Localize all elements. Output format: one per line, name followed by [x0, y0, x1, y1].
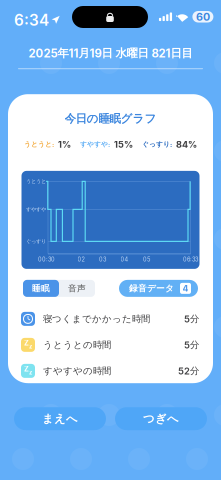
staticText: 60: [196, 10, 210, 23]
staticText: 1%: [58, 139, 71, 150]
staticText: 84%: [176, 139, 197, 150]
staticText: 04: [120, 256, 128, 263]
staticText: ぐっすり:: [142, 140, 172, 149]
staticText: z: [29, 369, 32, 376]
staticText: 15%: [114, 139, 133, 150]
button[interactable]: 音声: [59, 280, 95, 297]
staticText: 2025年11月19日 水曜日 821日目: [28, 46, 192, 60]
button[interactable]: Z: [8, 358, 213, 384]
staticText: 録音データ: [129, 283, 174, 294]
button[interactable]: 寝つくまでかかった時間: [8, 306, 213, 332]
staticText: 音声: [68, 283, 86, 294]
staticText: 6:34: [14, 11, 49, 30]
staticText: すやすやの時間: [43, 365, 111, 377]
staticText: Z: [24, 364, 29, 373]
staticText: うとうとの時間: [43, 339, 111, 351]
staticText: 00:30: [38, 256, 55, 263]
button[interactable]: つぎへ: [115, 407, 207, 430]
staticText: すやすや: [26, 206, 46, 213]
staticText: うとうと:: [24, 140, 54, 149]
button[interactable]: 睡眠: [23, 280, 59, 297]
staticText: 05: [143, 256, 150, 263]
staticText: 06:33: [183, 256, 198, 263]
staticText: まえへ: [42, 411, 78, 426]
staticText: 寝つくまでかかった時間: [43, 313, 150, 325]
staticText: Z: [24, 338, 29, 347]
staticText: うとうと: [26, 178, 46, 185]
staticText: z: [29, 343, 32, 350]
staticText: 5分: [184, 313, 199, 325]
staticText: 02: [77, 256, 84, 263]
button[interactable]: 録音データ: [119, 280, 198, 297]
staticText: 今日の睡眠グラフ: [64, 111, 156, 126]
staticText: すやすや:: [80, 140, 110, 149]
staticText: 03: [99, 256, 106, 263]
button[interactable]: まえへ: [14, 407, 106, 430]
staticText: ぐっすり: [26, 238, 46, 245]
staticText: 睡眠: [32, 283, 50, 294]
staticText: つぎへ: [143, 411, 179, 426]
staticText: 5分: [184, 339, 199, 351]
staticText: 52分: [178, 365, 199, 377]
button[interactable]: Z: [8, 332, 213, 358]
staticText: 4: [182, 283, 188, 294]
